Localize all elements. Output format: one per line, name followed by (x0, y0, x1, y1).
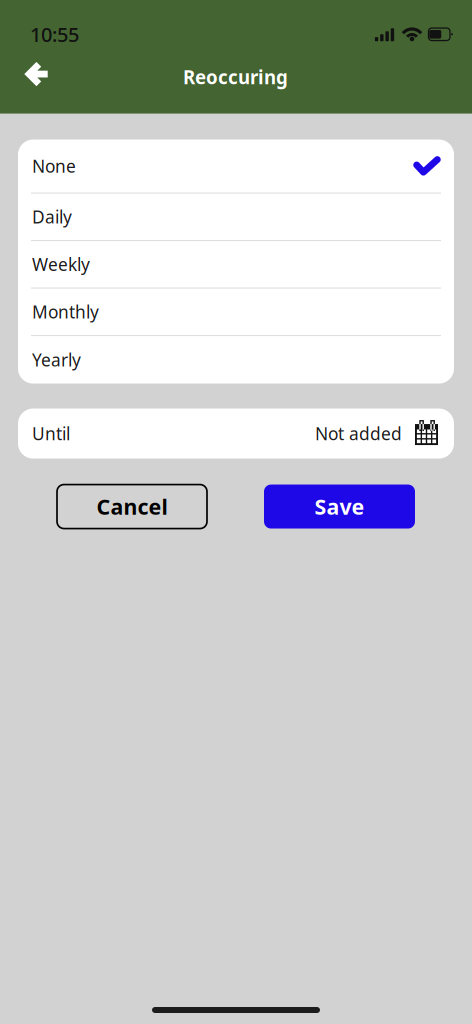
button[interactable]: Weekly (18, 241, 454, 289)
staticText: 10:55 (30, 21, 79, 48)
staticText: None (32, 155, 76, 178)
staticText: Daily (32, 205, 72, 228)
button[interactable]: Yearly (18, 336, 454, 384)
button[interactable]: Until (0, 409, 472, 459)
button[interactable]: Monthly (18, 289, 454, 336)
staticText: Cancel (96, 492, 167, 521)
button[interactable]: Daily (18, 194, 454, 241)
staticText: Not added (315, 422, 402, 445)
button[interactable]: Cancel (57, 485, 207, 529)
staticText: Until (32, 422, 70, 445)
staticText: Reoccuring (183, 65, 288, 89)
button[interactable]: Back (0, 55, 63, 100)
button[interactable]: Save (264, 485, 415, 529)
staticText: Weekly (32, 253, 90, 276)
staticText: Yearly (32, 348, 81, 371)
staticText: Save (314, 492, 364, 521)
button[interactable]: None (18, 140, 454, 194)
staticText: Monthly (32, 300, 99, 323)
